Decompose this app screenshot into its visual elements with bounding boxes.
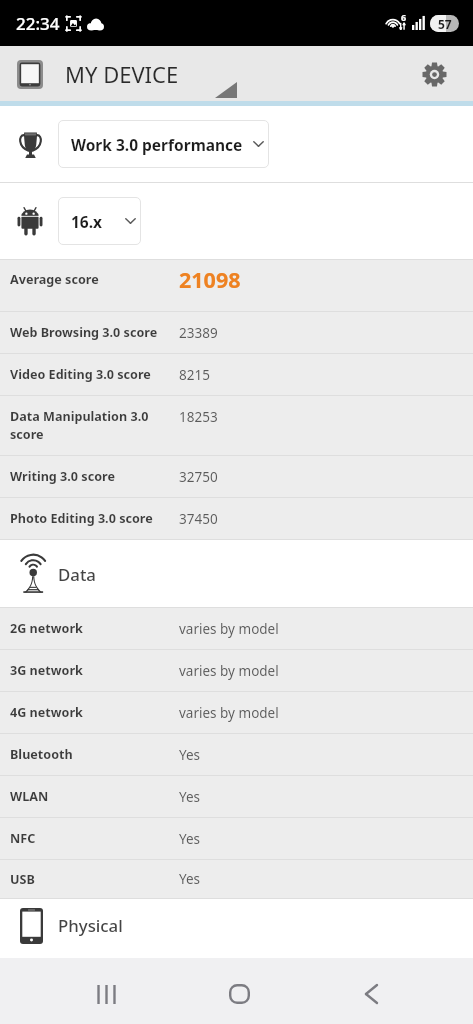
button[interactable]: WLAN — [0, 776, 473, 817]
button[interactable]: NFC — [0, 818, 473, 859]
staticText: Work 3.0 performance — [71, 134, 243, 155]
staticText: Yes — [179, 788, 201, 806]
button[interactable]: Settings — [414, 54, 454, 94]
staticText: varies by model — [179, 704, 279, 722]
button[interactable]: Recent apps — [78, 966, 134, 1022]
staticText: Yes — [179, 870, 201, 888]
button[interactable]: 3G network — [0, 650, 473, 691]
staticText: MY DEVICE — [65, 59, 179, 89]
staticText: 3G network — [10, 662, 175, 679]
staticText: USB — [10, 871, 175, 888]
staticText: Data Manipulation 3.0 score — [10, 408, 175, 443]
staticText: Bluetooth — [10, 746, 175, 763]
staticText: 2G network — [10, 620, 175, 637]
staticText: 4G network — [10, 704, 175, 721]
button[interactable]: Work 3.0 performance — [58, 120, 269, 168]
staticText: 18253 — [179, 408, 218, 426]
staticText: WLAN — [10, 788, 175, 805]
staticText: 6 — [401, 11, 407, 23]
staticText: varies by model — [179, 662, 279, 680]
staticText: Data — [58, 563, 96, 586]
button[interactable]: Data — [0, 540, 473, 607]
button[interactable]: Bluetooth — [0, 734, 473, 775]
staticText: Yes — [179, 830, 201, 848]
staticText: 37450 — [179, 510, 218, 528]
button[interactable]: Back — [343, 966, 399, 1022]
staticText: Writing 3.0 score — [10, 468, 175, 485]
staticText: NFC — [10, 830, 175, 847]
staticText: 16.x — [71, 211, 103, 232]
staticText: Yes — [179, 746, 201, 764]
staticText: 23389 — [179, 324, 218, 342]
button[interactable]: Data Manipulation 3.0 score — [0, 396, 473, 455]
staticText: varies by model — [179, 620, 279, 638]
staticText: Video Editing 3.0 score — [10, 366, 175, 383]
button[interactable]: 2G network — [0, 608, 473, 649]
staticText: Physical — [58, 914, 123, 937]
button[interactable]: My device — [8, 52, 52, 96]
staticText: 22:34 — [16, 12, 60, 35]
staticText: Photo Editing 3.0 score — [10, 510, 175, 527]
button[interactable]: Video Editing 3.0 score — [0, 354, 473, 395]
button[interactable]: USB — [0, 860, 473, 898]
staticText: 8215 — [179, 366, 210, 384]
staticText: 57 — [438, 16, 452, 32]
staticText: 21098 — [179, 265, 241, 294]
staticText: 32750 — [179, 468, 218, 486]
button[interactable]: Physical — [0, 899, 473, 958]
button[interactable]: Writing 3.0 score — [0, 456, 473, 497]
button[interactable]: 4G network — [0, 692, 473, 733]
staticText: Web Browsing 3.0 score — [10, 324, 175, 341]
button[interactable]: Photo Editing 3.0 score — [0, 498, 473, 539]
button[interactable]: 16.x — [58, 197, 141, 245]
button[interactable]: Average score — [0, 260, 473, 311]
staticText: Average score — [10, 271, 175, 288]
button[interactable]: Home — [211, 966, 267, 1022]
button[interactable]: Web Browsing 3.0 score — [0, 312, 473, 353]
